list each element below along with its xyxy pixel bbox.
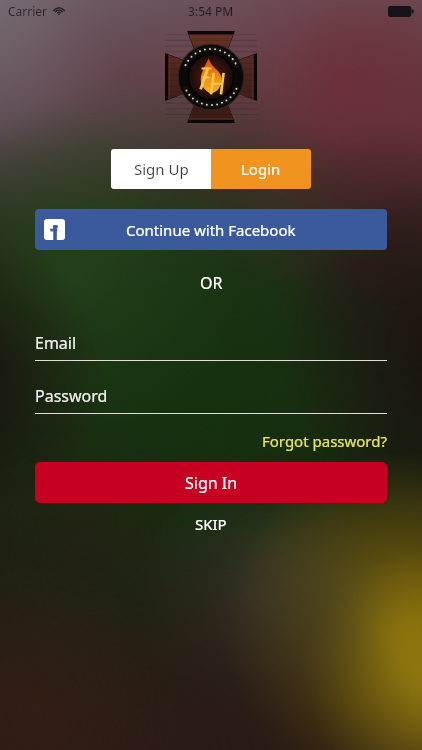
button[interactable]: SKIP: [177, 510, 245, 538]
staticText: Carrier: [8, 3, 48, 19]
staticText: Continue with Facebook: [126, 220, 296, 240]
staticText: OR: [200, 272, 223, 294]
button[interactable]: Sign Up: [111, 149, 211, 189]
button[interactable]: Email: [35, 332, 387, 361]
button[interactable]: Continue with Facebook: [35, 209, 387, 250]
staticText: Email: [35, 332, 77, 354]
staticText: Login: [241, 159, 281, 179]
staticText: Forgot password?: [261, 431, 387, 451]
staticText: 3:54 PM: [188, 3, 234, 19]
button[interactable]: Sign In: [35, 462, 387, 503]
staticText: Password: [35, 385, 108, 407]
button[interactable]: Login: [211, 149, 311, 189]
staticText: Sign Up: [134, 159, 189, 179]
staticText: Sign In: [185, 472, 238, 494]
button[interactable]: Password: [35, 385, 387, 414]
staticText: SKIP: [195, 514, 227, 534]
button[interactable]: Forgot password?: [261, 428, 387, 454]
